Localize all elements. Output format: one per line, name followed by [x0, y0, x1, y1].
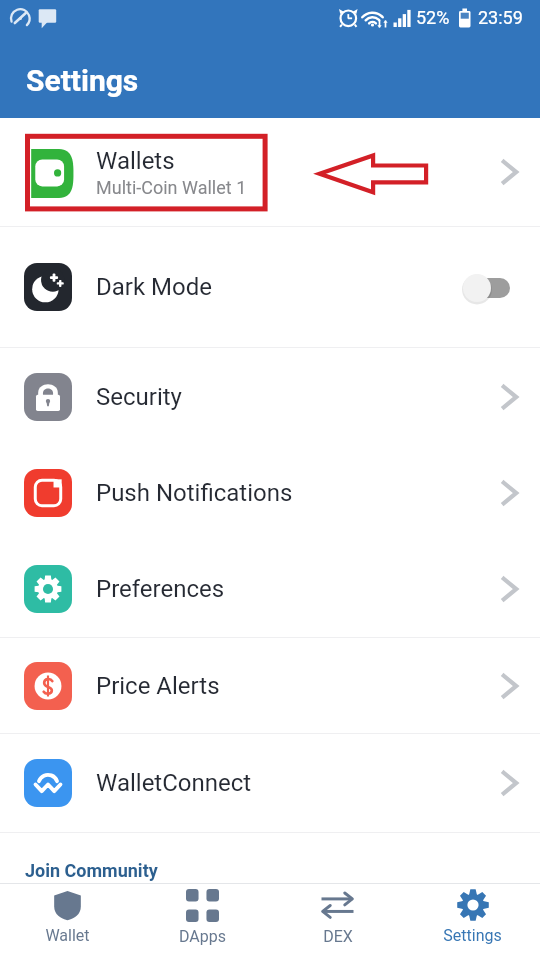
staticText: DApps: [179, 927, 226, 946]
button[interactable]: Dark Mode: [0, 227, 540, 347]
staticText: Wallet: [45, 926, 90, 945]
staticText: Push Notifications: [96, 479, 293, 507]
button[interactable]: Settings: [405, 884, 540, 960]
staticText: 23:59: [478, 7, 523, 28]
staticText: WalletConnect: [96, 769, 252, 797]
staticText: Dark Mode: [96, 273, 212, 301]
button[interactable]: Security: [0, 348, 540, 445]
button[interactable]: DApps: [135, 884, 270, 960]
staticText: DEX: [323, 927, 353, 946]
button[interactable]: Price Alerts: [0, 638, 540, 733]
button[interactable]: WalletConnect: [0, 734, 540, 832]
staticText: Multi-Coin Wallet 1: [96, 177, 247, 198]
staticText: Join Community: [25, 860, 158, 881]
button[interactable]: DEX: [270, 884, 405, 960]
staticText: Price Alerts: [96, 672, 220, 700]
staticText: Preferences: [96, 575, 225, 603]
staticText: Settings: [26, 63, 139, 98]
button[interactable]: Wallets: [0, 118, 540, 226]
staticText: Settings: [443, 926, 502, 945]
staticText: 52%: [416, 7, 450, 28]
button[interactable]: Push Notifications: [0, 445, 540, 541]
staticText: Wallets: [96, 147, 175, 175]
button[interactable]: Preferences: [0, 541, 540, 637]
button[interactable]: Wallet: [0, 884, 135, 960]
staticText: Security: [96, 383, 182, 411]
